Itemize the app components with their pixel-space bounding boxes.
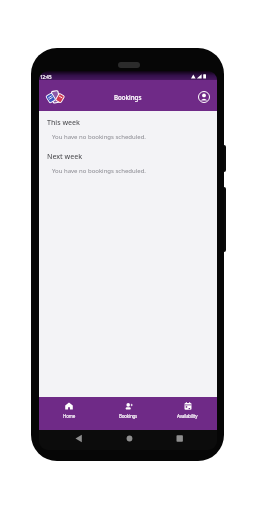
button[interactable]: Home [39, 397, 99, 430]
staticText: This week [47, 118, 81, 128]
staticText: Next week [47, 152, 83, 162]
staticText: You have no bookings scheduled. [52, 167, 146, 175]
button[interactable]: Bookings [99, 397, 158, 430]
staticText: Bookings [119, 413, 138, 419]
staticText: Availability [177, 413, 198, 419]
staticText: Home [63, 413, 76, 419]
staticText: Bookings [114, 93, 142, 101]
button[interactable] [197, 90, 211, 104]
staticText: You have no bookings scheduled. [52, 133, 146, 141]
staticText: 12:45 [40, 74, 52, 80]
button[interactable]: Availability [158, 397, 217, 430]
